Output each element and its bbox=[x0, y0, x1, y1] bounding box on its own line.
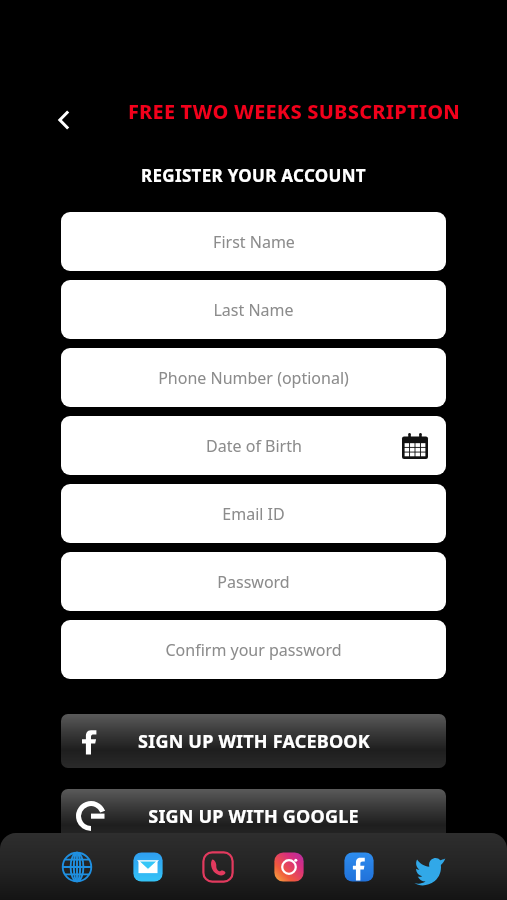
staticText: Password bbox=[217, 571, 290, 593]
button[interactable]: Website bbox=[56, 846, 98, 888]
button[interactable]: Facebook bbox=[338, 846, 380, 888]
button[interactable]: Date of Birth bbox=[61, 416, 446, 475]
staticText: Phone Number (optional) bbox=[158, 367, 349, 389]
button[interactable]: Email bbox=[127, 846, 169, 888]
staticText: FREE TWO WEEKS SUBSCRIPTION bbox=[128, 98, 460, 125]
button[interactable]: Email ID bbox=[61, 484, 446, 543]
button[interactable]: Pick date bbox=[399, 430, 431, 462]
staticText: SIGN UP WITH GOOGLE bbox=[148, 804, 359, 829]
staticText: Confirm your password bbox=[165, 639, 342, 661]
button[interactable]: Twitter bbox=[409, 846, 451, 888]
staticText: Date of Birth bbox=[206, 435, 302, 457]
staticText: First Name bbox=[213, 231, 295, 253]
button[interactable]: SIGN UP WITH GOOGLE bbox=[61, 789, 446, 843]
button[interactable]: First Name bbox=[61, 212, 446, 271]
staticText: Email ID bbox=[222, 503, 285, 525]
staticText: SIGN UP WITH FACEBOOK bbox=[138, 729, 370, 754]
button[interactable]: Phone Number (optional) bbox=[61, 348, 446, 407]
button[interactable]: Instagram bbox=[268, 846, 310, 888]
button[interactable]: Last Name bbox=[61, 280, 446, 339]
staticText: REGISTER YOUR ACCOUNT bbox=[141, 164, 366, 187]
button[interactable]: Password bbox=[61, 552, 446, 611]
button[interactable]: Back bbox=[42, 98, 86, 142]
staticText: Last Name bbox=[213, 299, 294, 321]
button[interactable]: Phone bbox=[197, 846, 239, 888]
button[interactable]: SIGN UP WITH FACEBOOK bbox=[61, 714, 446, 768]
button[interactable]: Confirm your password bbox=[61, 620, 446, 679]
